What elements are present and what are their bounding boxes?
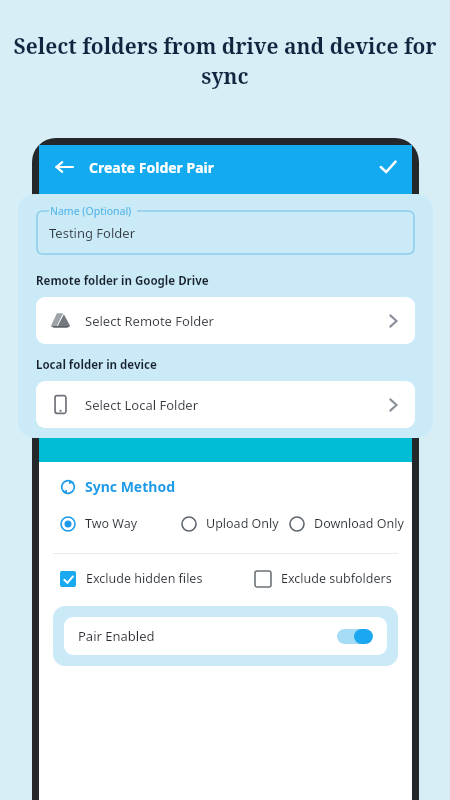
staticText: Testing Folder [49, 224, 135, 242]
staticText: Local folder in device [36, 357, 157, 373]
staticText: Select Local Folder [85, 396, 199, 414]
button[interactable]: Two Way [60, 513, 181, 534]
button[interactable]: Back [48, 151, 80, 183]
staticText: Name (Optional) [50, 204, 132, 218]
staticText: Exclude subfolders [281, 570, 392, 587]
staticText: Remote folder in Google Drive [36, 273, 209, 289]
button[interactable]: Download Only [289, 513, 404, 534]
staticText: Select folders from drive and device for… [12, 32, 438, 90]
staticText: Create Folder Pair [89, 158, 215, 177]
button[interactable]: Exclude subfolders [255, 568, 392, 589]
staticText: Download Only [314, 515, 404, 532]
staticText: Upload Only [206, 515, 279, 532]
button[interactable]: Exclude hidden files [60, 568, 255, 589]
staticText: Sync Method [85, 477, 176, 496]
staticText: Pair Enabled [78, 627, 155, 645]
button[interactable]: Upload Only [181, 513, 289, 534]
staticText: Select Remote Folder [85, 312, 214, 330]
staticText: Two Way [85, 515, 138, 532]
button[interactable]: Select Local Folder [36, 381, 415, 428]
button[interactable]: Pair Enabled [64, 617, 387, 655]
staticText: Exclude hidden files [86, 570, 203, 587]
button[interactable]: Select Remote Folder [36, 297, 415, 344]
button[interactable]: Save [372, 151, 404, 183]
